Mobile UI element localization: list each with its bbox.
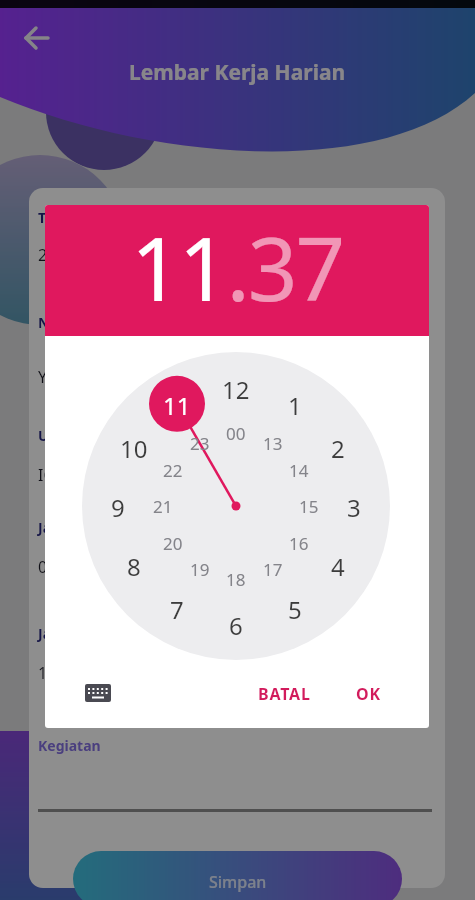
staticText: 11.37 [131, 208, 344, 326]
staticText: 08.00 [38, 556, 79, 578]
staticText: 21 [153, 495, 173, 518]
staticText: 5 [288, 593, 302, 623]
staticText: Unit [38, 426, 68, 445]
staticText: 17 [263, 558, 283, 581]
staticText: 20 [163, 532, 183, 555]
staticText: 8 [127, 550, 141, 580]
staticText: 9 [111, 491, 125, 521]
staticText: IGD [38, 464, 67, 486]
staticText: Lembar Kerja Harian [129, 58, 346, 87]
staticText: 22-04-2021 [38, 244, 122, 266]
staticText: 16 [289, 532, 309, 555]
button[interactable] [85, 682, 113, 704]
staticText: 13 [263, 432, 283, 455]
staticText: Yusuf Arisandi [38, 366, 146, 388]
staticText: 18 [226, 568, 246, 591]
staticText: Kegiatan [38, 736, 101, 755]
staticText: 6 [229, 609, 243, 639]
staticText: Tanggal [38, 208, 93, 227]
staticText: 00 [226, 422, 246, 445]
staticText: 1 [288, 389, 302, 419]
staticText: 23 [190, 432, 210, 455]
staticText: 12 [222, 373, 250, 403]
staticText: Nama [38, 313, 80, 332]
button[interactable]: BATAL [258, 683, 311, 705]
staticText: Simpan [209, 871, 267, 893]
staticText: 14 [289, 459, 309, 482]
staticText: 11 [163, 389, 191, 419]
staticText: 4 [331, 550, 345, 580]
staticText: 3 [347, 491, 361, 521]
staticText: 11.37 [38, 662, 79, 684]
staticText: 2 [331, 432, 345, 462]
staticText: 10 [120, 432, 148, 462]
button[interactable]: OK [356, 683, 381, 705]
staticText: Jam Mulai [38, 518, 108, 537]
staticText: 19 [190, 558, 210, 581]
staticText: 7 [170, 593, 184, 623]
staticText: 15 [299, 495, 319, 518]
staticText: Jam Selesai [38, 624, 117, 643]
button[interactable] [16, 18, 58, 58]
staticText: 22 [163, 459, 183, 482]
button[interactable]: Simpan [73, 851, 402, 900]
